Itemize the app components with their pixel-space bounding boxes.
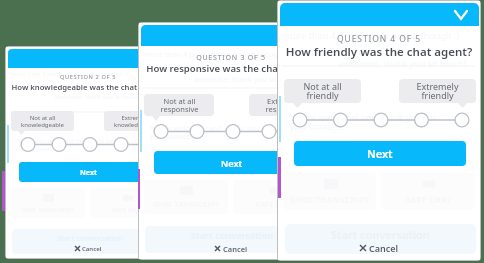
staticText: more than 4 products on a mug though :) [144, 49, 290, 59]
staticText: RATE CHAT [112, 206, 144, 213]
staticText: your business. [290, 121, 345, 132]
staticText: QUESTION 4 OF 5 [278, 33, 480, 45]
button[interactable]: Not at all knowledgeable [11, 111, 74, 131]
staticText: Extremely responsive [265, 96, 304, 114]
staticText: more than 4 products on a mug though :) [11, 70, 128, 78]
staticText: How knowledgeable was the chat agent? [8, 82, 168, 92]
button[interactable]: RATE CHAT [90, 188, 165, 218]
staticText: Cancel [223, 244, 248, 254]
button[interactable]: Minimise chat [451, 5, 471, 25]
staticText: How responsive was the chat agent? [142, 62, 320, 75]
button[interactable]: Start conversation [145, 226, 319, 253]
button[interactable]: Extremely responsive [249, 94, 319, 116]
staticText: Next [367, 146, 393, 161]
staticText: awesome, thank you so much! [194, 74, 301, 84]
staticText: You're welcome! and thank you for [150, 123, 272, 133]
staticText: awesome, thank you so much! [55, 93, 141, 101]
staticText: your business. [16, 145, 53, 152]
staticText: How friendly was the chat agent? [281, 44, 477, 60]
staticText: Next [221, 157, 243, 169]
button[interactable]: Not at all friendly [284, 79, 361, 103]
staticText: Not at all responsive [160, 96, 199, 114]
button[interactable]: Start conversation [12, 229, 168, 254]
staticText: Extremely knowledgeable [114, 114, 157, 129]
button[interactable]: Cancel [278, 241, 480, 255]
button[interactable]: Start conversation [285, 224, 476, 254]
staticText: RATE CHAT [256, 200, 295, 209]
staticText: Cancel [82, 245, 102, 253]
staticText: You're welcome! and thank you for [290, 111, 437, 123]
staticText: Next [80, 167, 98, 177]
button[interactable]: Extremely knowledgeable [104, 111, 167, 131]
staticText: You're welcome! and thank you for [16, 137, 114, 145]
staticText: Cancel [369, 242, 399, 254]
button[interactable]: Next [154, 151, 310, 174]
button[interactable]: Cancel [6, 243, 170, 254]
staticText: QUESTION 3 OF 5 [139, 52, 323, 62]
staticText: QUESTION 2 OF 5 [6, 73, 170, 81]
staticText: Extremely friendly [416, 80, 459, 102]
staticText: Not at all friendly [303, 80, 342, 102]
staticText: Not at all knowledgeable [21, 114, 64, 129]
staticText: awesome, thank you so much! [338, 57, 467, 69]
button[interactable]: Next [19, 162, 159, 182]
button[interactable]: Extremely friendly [399, 79, 476, 103]
button[interactable]: RATE CHAT [233, 180, 318, 214]
button[interactable]: Cancel [139, 242, 323, 255]
staticText: your business. [150, 132, 196, 141]
staticText: more than 4 products on a mug though :) [284, 29, 459, 41]
button[interactable]: Next [294, 141, 466, 166]
button[interactable]: Not at all responsive [144, 94, 214, 116]
